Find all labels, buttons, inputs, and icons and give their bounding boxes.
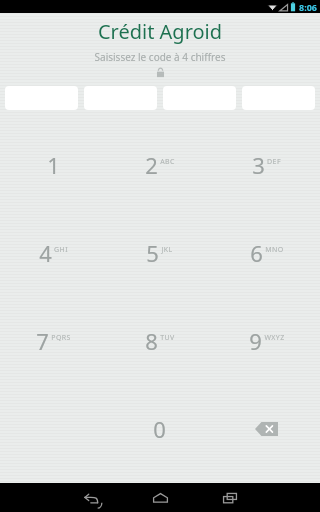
button[interactable]: Home [125,483,195,512]
staticText: MNO [265,245,284,255]
staticText: GHI [54,245,68,255]
button[interactable]: 2 [106,121,213,209]
staticText: Saisissez le code à 4 chiffres [0,50,320,64]
staticText: 9 [249,326,262,356]
staticText: DEF [267,157,281,167]
staticText: 8 [145,326,158,356]
button[interactable]: 3 [213,121,320,209]
staticText: 7 [36,326,49,356]
staticText: JKL [161,245,173,255]
staticText: 4 [39,238,52,268]
staticText: 2 [145,150,158,180]
staticText: 0 [153,414,166,444]
button[interactable]: 7 [0,297,106,385]
button[interactable]: Back [55,483,125,512]
button[interactable]: 8 [106,297,213,385]
button[interactable]: 5 [106,209,213,297]
button[interactable]: 9 [213,297,320,385]
button[interactable]: 6 [213,209,320,297]
button[interactable]: 4 [0,209,106,297]
staticText: ABC [160,157,175,167]
staticText: 3 [252,150,265,180]
staticText: 1 [47,150,60,180]
staticText: 8:06 [299,1,317,13]
button[interactable]: Backspace [213,385,320,473]
button[interactable]: 0 [106,385,213,473]
staticText: PQRS [51,333,71,343]
staticText: WXYZ [264,333,285,343]
staticText: TUV [160,333,175,343]
staticText: Crédit Agroid [0,18,320,45]
button[interactable]: Recent apps [195,483,265,512]
staticText: 5 [146,238,159,268]
button[interactable]: 1 [0,121,106,209]
staticText: 6 [250,238,263,268]
